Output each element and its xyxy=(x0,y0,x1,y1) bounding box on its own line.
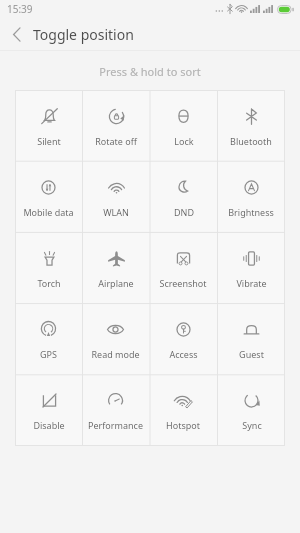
button[interactable]: Disable xyxy=(15,375,82,446)
staticText: WLAN xyxy=(103,206,129,218)
staticText: Screenshot xyxy=(159,277,207,289)
button[interactable]: Torch xyxy=(15,233,82,304)
button[interactable]: Performance xyxy=(82,375,149,446)
button[interactable]: Read mode xyxy=(82,304,149,375)
staticText: Press & hold to sort xyxy=(0,64,300,79)
staticText: Mobile data xyxy=(23,206,74,218)
staticText: Vibrate xyxy=(236,277,267,289)
button[interactable]: Back xyxy=(0,18,33,51)
staticText: Airplane xyxy=(98,277,134,289)
staticText: DND xyxy=(174,206,194,218)
button[interactable]: Lock xyxy=(149,90,217,162)
staticText: Lock xyxy=(174,135,194,147)
staticText: Rotate off xyxy=(95,135,137,147)
button[interactable]: Airplane xyxy=(82,233,149,304)
staticText: Silent xyxy=(37,135,61,147)
staticText: Hotspot xyxy=(166,419,200,431)
staticText: Performance xyxy=(88,419,143,431)
button[interactable]: Brightness xyxy=(217,162,285,233)
button[interactable]: Silent xyxy=(15,90,82,162)
staticText: 15:39 xyxy=(7,2,33,16)
staticText: Toggle position xyxy=(33,25,134,44)
staticText: Brightness xyxy=(228,206,274,218)
staticText: GPS xyxy=(40,348,57,360)
button[interactable]: Vibrate xyxy=(217,233,285,304)
staticText: Sync xyxy=(242,419,262,431)
button[interactable]: DND xyxy=(149,162,217,233)
staticText: Disable xyxy=(33,419,65,431)
staticText: Guest xyxy=(239,348,264,360)
button[interactable]: WLAN xyxy=(82,162,149,233)
button[interactable]: Bluetooth xyxy=(217,90,285,162)
staticText: Bluetooth xyxy=(230,135,272,147)
button[interactable]: Mobile data xyxy=(15,162,82,233)
button[interactable]: GPS xyxy=(15,304,82,375)
button[interactable]: Rotate off xyxy=(82,90,149,162)
button[interactable]: Sync xyxy=(217,375,285,446)
button[interactable]: Hotspot xyxy=(149,375,217,446)
button[interactable]: Guest xyxy=(217,304,285,375)
button[interactable]: Access xyxy=(149,304,217,375)
staticText: Access xyxy=(169,348,198,360)
staticText: Read mode xyxy=(91,348,140,360)
button[interactable]: Screenshot xyxy=(149,233,217,304)
staticText: Torch xyxy=(37,277,61,289)
